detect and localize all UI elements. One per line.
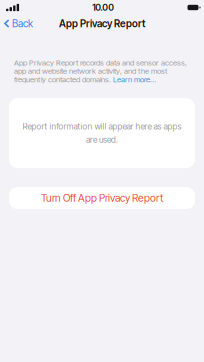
staticText: Report information will appear here as a… — [22, 121, 181, 132]
button[interactable]: Back — [0, 14, 39, 33]
staticText: Turn Off App Privacy Report — [41, 192, 163, 204]
staticText: App Privacy Report records data and sens… — [14, 58, 187, 67]
staticText: Back — [12, 17, 33, 30]
staticText: App Privacy Report — [59, 17, 145, 30]
staticText: are used. — [86, 135, 118, 145]
button[interactable]: Turn Off App Privacy Report — [0, 187, 204, 209]
staticText: app and website network activity, and th… — [14, 66, 167, 76]
staticText: 10.00 — [92, 2, 114, 13]
button[interactable]: Learn more… — [113, 75, 156, 84]
staticText: frequently contacted domains. — [14, 75, 113, 84]
staticText: Learn more… — [113, 75, 156, 84]
